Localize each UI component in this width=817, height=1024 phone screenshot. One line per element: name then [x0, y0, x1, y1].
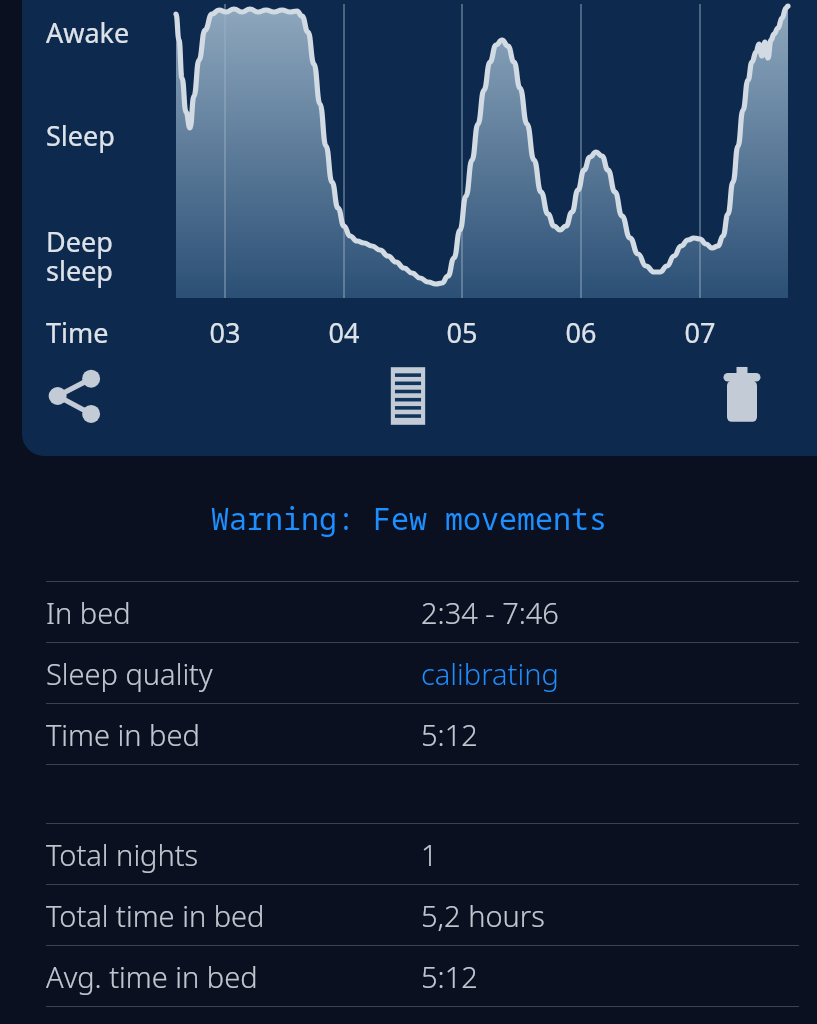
staticText: Deep sleep: [46, 223, 113, 289]
button[interactable]: Sleep quality: [0, 643, 817, 703]
button[interactable]: In bed: [0, 582, 817, 642]
staticText: Avg. time in bed: [46, 957, 258, 996]
staticText: Sleep quality: [46, 654, 213, 693]
staticText: 04: [320, 314, 368, 351]
button[interactable]: Time in bed: [0, 704, 817, 764]
staticText: Sleep: [46, 117, 115, 154]
staticText: 5,2 hours: [421, 896, 545, 935]
button[interactable]: Details: [338, 346, 478, 446]
staticText: 07: [676, 314, 724, 351]
staticText: In bed: [46, 593, 131, 632]
button[interactable]: Warning: Few movements: [0, 456, 817, 581]
button[interactable]: Avg. time in bed: [0, 946, 817, 1006]
staticText: Total time in bed: [46, 896, 265, 935]
button[interactable]: Total nights: [0, 824, 817, 884]
staticText: Time: [46, 314, 109, 351]
staticText: Awake: [46, 14, 130, 51]
staticText: Total nights: [46, 835, 199, 874]
staticText: 03: [201, 314, 249, 351]
staticText: Time in bed: [46, 715, 200, 754]
staticText: 2:34 - 7:46: [421, 593, 559, 632]
button[interactable]: Total time in bed: [0, 885, 817, 945]
staticText: 5:12: [421, 715, 478, 754]
staticText: Warning: Few movements: [211, 498, 607, 539]
staticText: 06: [557, 314, 605, 351]
button[interactable]: Delete: [667, 346, 817, 446]
staticText: 5:12: [421, 957, 478, 996]
staticText: 05: [438, 314, 486, 351]
staticText: 1: [421, 835, 438, 874]
staticText: calibrating: [421, 654, 559, 693]
button[interactable]: Share: [0, 346, 150, 446]
